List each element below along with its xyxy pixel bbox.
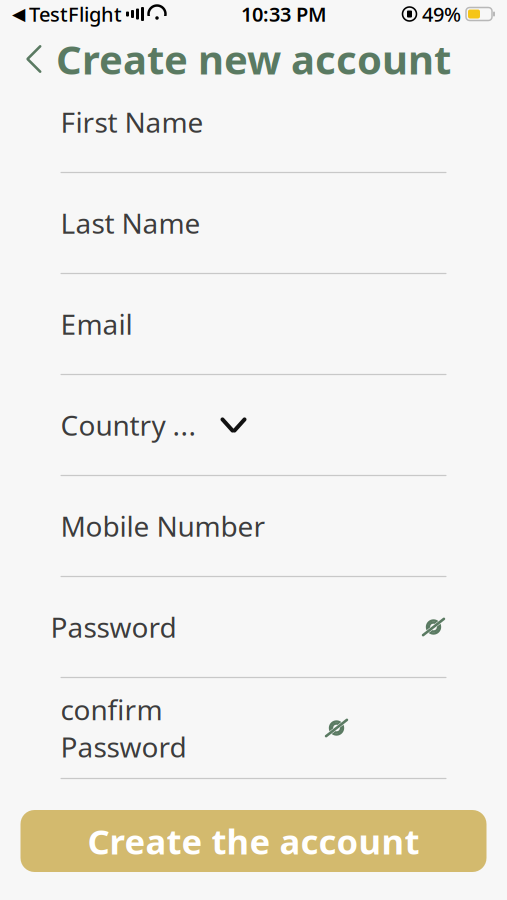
button[interactable]: Last Name — [60, 209, 446, 310]
button[interactable]: Email — [60, 310, 446, 411]
button[interactable]: Back — [8, 33, 60, 85]
button[interactable]: Password — [60, 613, 446, 714]
staticText: Email — [60, 305, 132, 343]
staticText: TestFlight — [29, 1, 122, 27]
staticText: confirm Password — [60, 691, 186, 765]
button[interactable]: confirm Password — [60, 714, 446, 815]
staticText: Mobile Number — [60, 507, 265, 545]
staticText: Create new account — [56, 32, 451, 85]
staticText: Password — [50, 608, 176, 646]
staticText: Last Name — [60, 204, 200, 242]
staticText: 49% — [422, 1, 461, 27]
button[interactable]: Mobile Number — [60, 512, 446, 613]
staticText: 10:33 PM — [241, 1, 327, 27]
button[interactable]: First Name — [60, 108, 446, 209]
staticText: Create the account — [87, 818, 419, 864]
staticText: ◀ — [12, 4, 25, 24]
staticText: Country ... — [60, 406, 196, 444]
button[interactable]: Country ... — [60, 411, 446, 512]
staticText: First Name — [60, 103, 203, 141]
button[interactable]: Create the account — [20, 810, 486, 872]
